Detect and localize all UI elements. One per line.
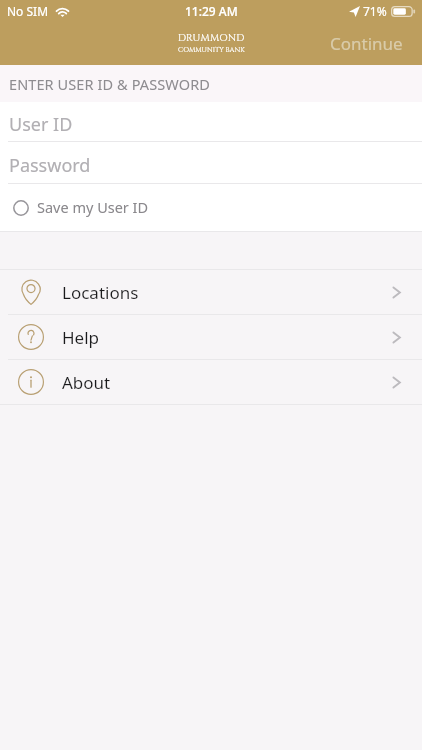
button[interactable]: Locations [0, 270, 422, 314]
staticText: ENTER USER ID & PASSWORD [9, 74, 210, 94]
staticText: Save my User ID [37, 197, 149, 217]
staticText: Help [62, 326, 100, 349]
staticText: No SIM [7, 3, 49, 19]
button[interactable]: Password [0, 142, 422, 184]
staticText: Locations [62, 281, 139, 304]
button[interactable]: User ID [0, 102, 422, 142]
staticText: Continue [330, 32, 403, 55]
staticText: COMMUNITY BANK [178, 45, 245, 54]
staticText: DRUMMOND [178, 31, 245, 44]
button[interactable]: Help [0, 315, 422, 359]
staticText: 11:29 AM [185, 3, 238, 19]
staticText: About [62, 371, 111, 394]
button[interactable]: About [0, 360, 422, 404]
button[interactable]: Save my User ID [0, 184, 422, 231]
staticText: 71% [363, 3, 387, 19]
staticText: Password [9, 153, 91, 178]
staticText: User ID [9, 112, 73, 137]
button[interactable]: Continue [308, 22, 422, 62]
